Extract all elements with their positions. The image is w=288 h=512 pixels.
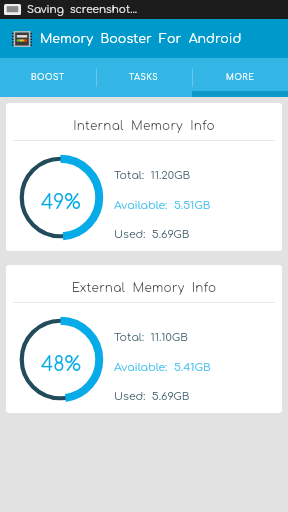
- staticText: Internal Memory Info: [6, 119, 282, 132]
- staticText: Used: 5.69GB: [114, 390, 190, 402]
- button[interactable]: TASKS: [96, 58, 192, 97]
- staticText: Available: 5.41GB: [114, 361, 211, 373]
- button[interactable]: MORE: [192, 58, 288, 97]
- staticText: Used: 5.69GB: [114, 228, 190, 240]
- staticText: Total: 11.20GB: [114, 169, 191, 181]
- staticText: BOOST: [31, 73, 65, 82]
- staticText: TASKS: [129, 73, 159, 82]
- other: Memory Booster: [12, 30, 32, 48]
- button[interactable]: External Memory Info: [6, 265, 282, 413]
- staticText: Memory Booster For Android: [40, 32, 242, 46]
- staticText: External Memory Info: [6, 281, 282, 294]
- staticText: MORE: [226, 73, 255, 82]
- button[interactable]: Internal Memory Info: [6, 103, 282, 251]
- staticText: Available: 5.51GB: [114, 199, 211, 211]
- staticText: Total: 11.10GB: [114, 331, 188, 343]
- staticText: Saving screenshot...: [27, 4, 137, 16]
- other: Memory usage 49%: [16, 153, 105, 242]
- staticText: 49%: [41, 192, 81, 213]
- other: Memory usage 48%: [16, 315, 105, 404]
- staticText: 48%: [41, 354, 81, 375]
- button[interactable]: BOOST: [0, 58, 96, 97]
